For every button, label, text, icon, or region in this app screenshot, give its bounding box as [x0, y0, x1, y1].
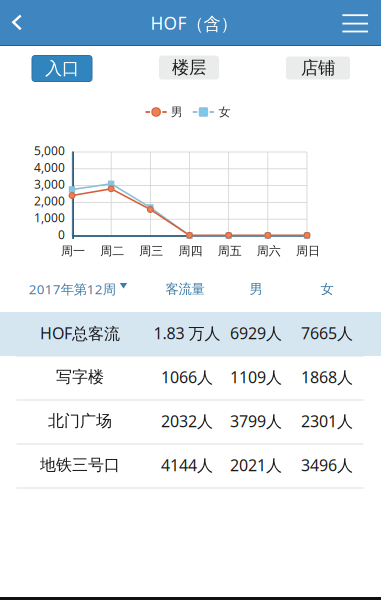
staticText: HOF（含） — [150, 11, 237, 34]
button[interactable]: 店铺 — [286, 56, 350, 79]
staticText: 6929人 — [230, 322, 282, 344]
button[interactable]: 2017年第12周 — [23, 275, 133, 303]
staticText: 女 — [218, 105, 230, 119]
staticText: 2032人 — [161, 410, 213, 432]
staticText: 2017年第12周 — [29, 280, 116, 298]
staticText: 女 — [320, 281, 333, 297]
staticText: 写字楼 — [56, 367, 104, 387]
staticText: 周三 — [139, 244, 163, 258]
staticText: 3799人 — [230, 410, 282, 432]
staticText: 周日 — [296, 244, 320, 258]
staticText: 1.83 万人 — [153, 322, 220, 344]
staticText: 2301人 — [301, 410, 353, 432]
button[interactable]: 地铁三号口 — [0, 444, 381, 488]
staticText: 男 — [249, 281, 262, 297]
staticText: 3,000 — [34, 176, 65, 192]
staticText: 1066人 — [161, 366, 213, 388]
button[interactable]: Menu — [338, 8, 372, 38]
staticText: 客流量 — [165, 281, 204, 297]
staticText: 1,000 — [34, 210, 65, 226]
staticText: 2021人 — [230, 454, 282, 476]
staticText: 周六 — [257, 244, 281, 258]
staticText: 店铺 — [301, 57, 335, 79]
staticText: 1109人 — [230, 366, 282, 388]
staticText: 周四 — [178, 244, 202, 258]
button[interactable]: Back — [0, 8, 34, 38]
staticText: 2,000 — [34, 193, 65, 209]
staticText: HOF总客流 — [40, 322, 120, 344]
staticText: 周一 — [61, 244, 85, 258]
staticText: 入口 — [45, 58, 79, 79]
staticText: 周二 — [100, 244, 124, 258]
staticText: 5,000 — [34, 142, 65, 158]
staticText: 4144人 — [161, 454, 213, 476]
staticText: 周五 — [218, 244, 242, 258]
staticText: 楼层 — [172, 57, 206, 78]
button[interactable]: 写字楼 — [0, 356, 381, 400]
staticText: 7665人 — [301, 322, 353, 344]
staticText: 0 — [58, 226, 65, 242]
staticText: 男 — [171, 105, 183, 119]
button[interactable]: 入口 — [32, 55, 92, 81]
staticText: 3496人 — [301, 454, 353, 476]
staticText: 4,000 — [34, 159, 65, 175]
staticText: 1868人 — [301, 366, 353, 388]
button[interactable]: 北门广场 — [0, 400, 381, 444]
button[interactable]: HOF总客流 — [0, 312, 381, 356]
staticText: 地铁三号口 — [40, 455, 120, 475]
staticText: 北门广场 — [48, 411, 112, 431]
button[interactable]: 楼层 — [159, 55, 219, 79]
